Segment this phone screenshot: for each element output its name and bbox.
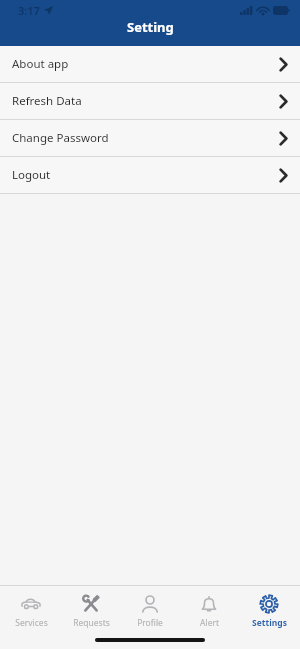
staticText: Services — [15, 617, 48, 629]
staticText: Requests — [73, 617, 110, 629]
staticText: Setting — [127, 18, 174, 36]
button[interactable]: Settings — [241, 592, 297, 631]
staticText: Change Password — [12, 130, 109, 146]
button[interactable]: Profile — [122, 592, 178, 631]
staticText: Alert — [200, 617, 219, 629]
button[interactable]: Services — [3, 592, 59, 631]
staticText: Refresh Data — [12, 93, 82, 109]
button[interactable]: Requests — [63, 592, 119, 631]
button[interactable]: Logout — [0, 157, 300, 193]
staticText: About app — [12, 56, 69, 72]
staticText: Logout — [12, 167, 51, 183]
staticText: Settings — [252, 617, 287, 629]
button[interactable]: Refresh Data — [0, 83, 300, 119]
staticText: 3:17 — [18, 3, 40, 18]
button[interactable]: About app — [0, 46, 300, 82]
staticText: Profile — [137, 617, 163, 629]
button[interactable]: Alert — [181, 592, 237, 631]
button[interactable]: Change Password — [0, 120, 300, 156]
